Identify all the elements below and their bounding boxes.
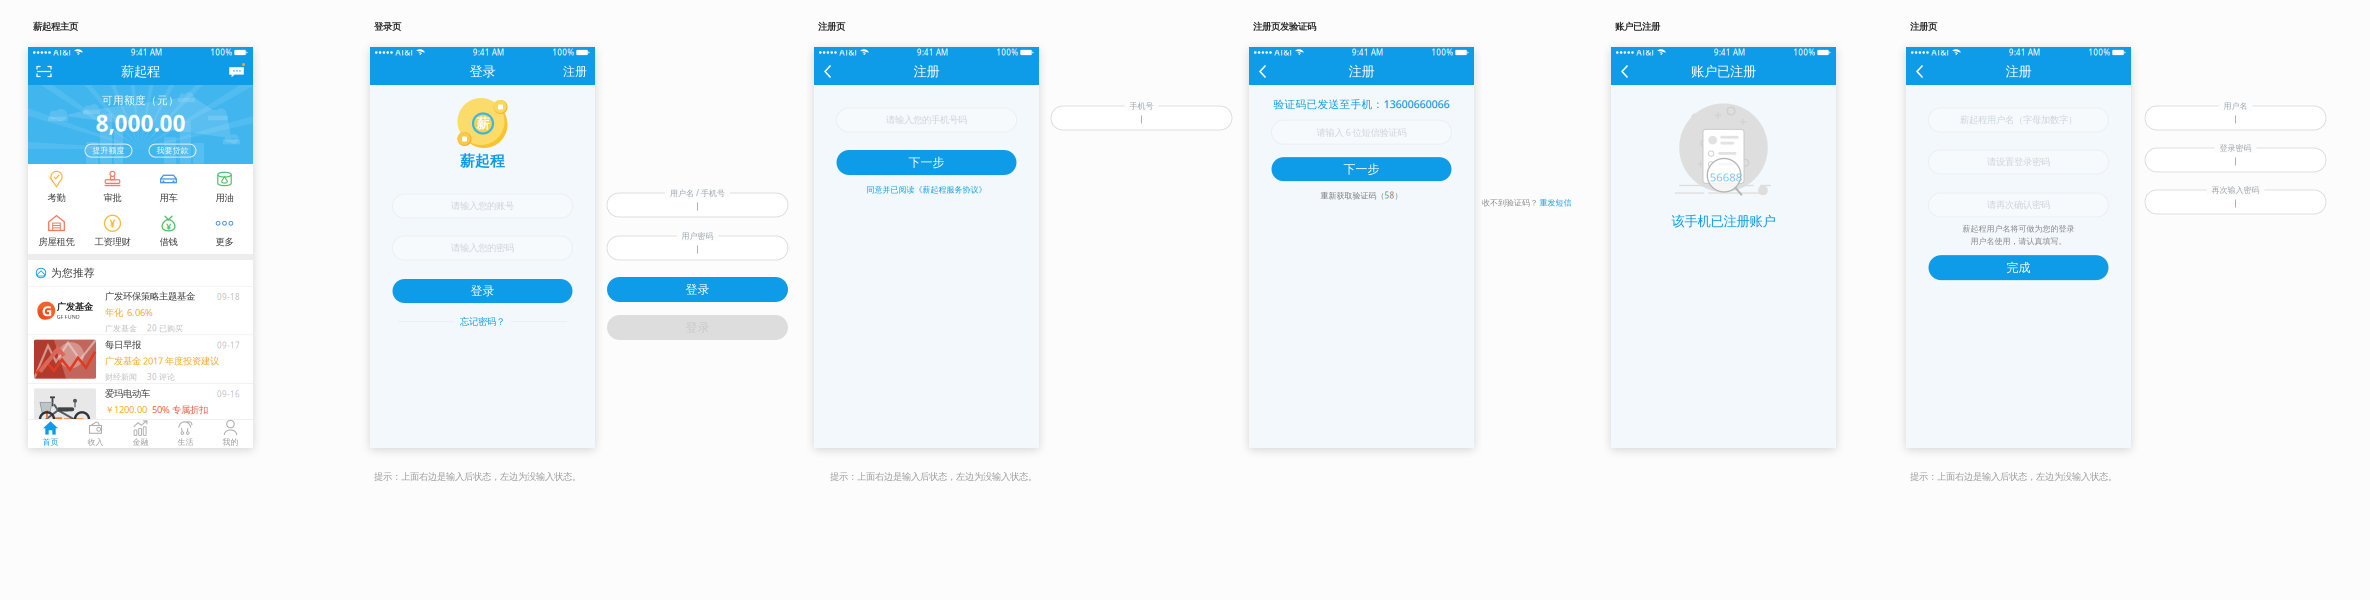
staticText: 房屋租凭 — [38, 236, 74, 248]
staticText: 9:41 AM — [917, 47, 948, 58]
staticText: 50% 专属折扣 — [152, 403, 208, 416]
button[interactable]: 重发短信 — [1539, 198, 1571, 208]
button[interactable]: 收入 — [73, 419, 118, 448]
button[interactable]: 再次输入密码 — [2145, 190, 2326, 214]
staticText: 可用额度（元） — [102, 94, 179, 107]
button[interactable]: 下一步 — [836, 150, 1016, 175]
button[interactable]: 登录 — [392, 279, 572, 303]
button[interactable]: 请再次确认密码 — [1928, 193, 2108, 217]
staticText: 登录 — [469, 63, 495, 80]
staticText: 财经新闻 30 评论 — [105, 372, 175, 382]
button[interactable]: 登录 — [607, 315, 788, 340]
button[interactable]: 请输入 6 位短信验证码 — [1271, 120, 1451, 144]
staticText: 我要贷款 — [156, 146, 188, 155]
button[interactable]: 下一步 — [1271, 157, 1451, 181]
button[interactable]: 登录 — [607, 277, 788, 302]
button[interactable]: ¥ — [84, 211, 140, 251]
button[interactable]: ¥ — [140, 211, 196, 251]
button[interactable]: 每日早报 — [28, 335, 253, 383]
staticText: 审批 — [103, 192, 121, 204]
staticText: ¥ — [166, 220, 171, 232]
button[interactable]: 重新获取验证码（58） — [1320, 181, 1402, 201]
button[interactable]: 返回 — [1619, 58, 1635, 85]
staticText: 用户名 — [2223, 101, 2247, 111]
button[interactable]: 登录密码 — [2145, 148, 2326, 172]
button[interactable]: 手机号 — [1051, 106, 1232, 130]
staticText: AT&T — [1931, 47, 1949, 58]
staticText: 100% — [552, 47, 574, 58]
staticText: 薪起程 — [460, 152, 505, 170]
button[interactable]: 注册 — [563, 58, 587, 85]
button[interactable]: 请输入您的手机号码 — [836, 108, 1016, 132]
button[interactable]: 金融 — [118, 419, 163, 448]
staticText: 同意并已阅读《薪起程服务协议》 — [866, 185, 986, 195]
button[interactable]: 用车 — [140, 167, 196, 207]
staticText: AT&T — [53, 47, 71, 58]
button[interactable]: 用户名 — [2145, 106, 2326, 130]
staticText: 注册 — [1348, 63, 1374, 80]
staticText: 手机号 — [1129, 101, 1153, 111]
staticText: 重发短信 — [1539, 198, 1571, 208]
staticText: ￥1200.00 — [105, 403, 147, 416]
button[interactable]: 我的 — [208, 419, 253, 448]
staticText: 用户名使用，请认真填写。 — [1970, 236, 2066, 246]
staticText: 薪起程用户名将可做为您的登录 — [1962, 224, 2074, 234]
staticText: 更多 — [215, 236, 233, 248]
staticText: 首页 — [42, 437, 58, 447]
staticText: AT&T — [1274, 47, 1292, 58]
button[interactable]: 用油 — [196, 167, 252, 207]
staticText: 100% — [1431, 47, 1453, 58]
staticText: 该手机已注册账户 — [1671, 213, 1775, 229]
staticText: 账户已注册 — [1615, 21, 1660, 32]
button[interactable]: 用户密码 — [607, 236, 788, 260]
staticText: 广发环保策略主题基金 — [105, 291, 195, 302]
button[interactable]: 扫一扫 — [36, 58, 52, 85]
staticText: 生活 — [177, 437, 193, 447]
button[interactable]: 提升额度 — [85, 144, 132, 157]
button[interactable]: 完成 — [1928, 255, 2108, 280]
staticText: 再次输入密码 — [2211, 185, 2259, 195]
button[interactable]: 用户名 / 手机号 — [607, 193, 788, 217]
button[interactable]: 更多 — [196, 211, 252, 251]
button[interactable]: 请设置登录密码 — [1928, 150, 2108, 174]
button[interactable]: 同意并已阅读《薪起程服务协议》 — [866, 175, 986, 195]
staticText: 忘记密码？ — [460, 316, 505, 327]
button[interactable]: 房屋租凭 — [28, 211, 84, 251]
staticText: 9:41 AM — [1714, 47, 1745, 58]
button[interactable]: G — [28, 287, 253, 335]
staticText: 请再次确认密码 — [1987, 199, 2050, 211]
staticText: 请设置登录密码 — [1987, 156, 2050, 168]
button[interactable]: 我要贷款 — [149, 144, 196, 157]
staticText: 广发基金 2017 年度投资建议 — [105, 355, 219, 367]
button[interactable]: 请输入您的密码 — [392, 236, 572, 260]
button[interactable]: 爱玛电动车 — [28, 384, 253, 432]
staticText: 请输入 6 位短信验证码 — [1316, 126, 1406, 138]
button[interactable]: 生活 — [163, 419, 208, 448]
staticText: AT&T — [1636, 47, 1654, 58]
button[interactable]: 首页 — [28, 419, 73, 448]
staticText: 考勤 — [47, 192, 65, 204]
button[interactable]: 请输入您的账号 — [392, 194, 572, 218]
staticText: 56688 — [1710, 168, 1740, 182]
staticText: 09-18 — [217, 292, 240, 302]
staticText: 09-17 — [217, 340, 240, 351]
staticText: 下一步 — [908, 155, 944, 170]
staticText: 收不到验证码？ — [1482, 198, 1538, 208]
button[interactable]: 返回 — [1914, 58, 1930, 85]
button[interactable]: 返回 — [1257, 58, 1273, 85]
staticText: 9:41 AM — [131, 47, 162, 58]
button[interactable]: 消息 — [228, 58, 245, 85]
staticText: 用户名 / 手机号 — [670, 188, 725, 198]
staticText: AT&T — [839, 47, 857, 58]
button[interactable]: 考勤 — [28, 167, 84, 207]
staticText: 账户已注册 — [1691, 63, 1756, 80]
staticText: 用油 — [215, 192, 233, 204]
staticText: G — [42, 301, 53, 320]
button[interactable]: 薪起程用户名（字母加数字） — [1928, 108, 2108, 132]
button[interactable]: 审批 — [84, 167, 140, 207]
button[interactable]: 返回 — [822, 58, 838, 85]
staticText: GF FUND — [57, 313, 80, 320]
staticText: 用户密码 — [681, 231, 713, 241]
staticText: 注册页 — [1910, 21, 1937, 32]
staticText: 登录页 — [374, 21, 401, 32]
